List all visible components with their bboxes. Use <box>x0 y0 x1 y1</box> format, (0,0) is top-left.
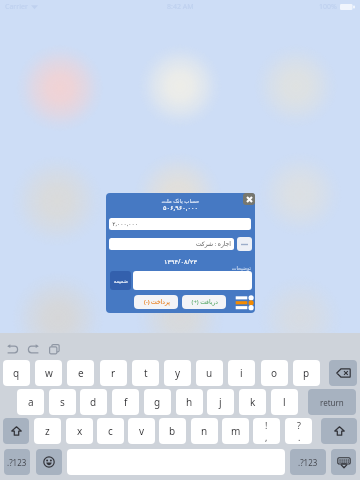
button[interactable]: Close <box>243 193 255 205</box>
staticText: دریافت (+) <box>191 298 218 306</box>
staticText: پرداخت (-) <box>143 298 170 306</box>
staticText: ? <box>297 419 301 431</box>
button[interactable]: n <box>191 418 218 444</box>
button[interactable]: ? <box>285 418 312 444</box>
staticText: , <box>265 431 268 443</box>
staticText: .?123 <box>7 457 27 468</box>
button[interactable]: Account <box>109 238 234 250</box>
button[interactable]: s <box>49 389 76 415</box>
staticText: q <box>13 366 20 380</box>
staticText: v <box>139 424 145 438</box>
button[interactable]: ! <box>253 418 280 444</box>
button[interactable]: Shift <box>3 418 29 444</box>
button[interactable]: o <box>261 360 288 386</box>
staticText: f <box>124 395 128 409</box>
staticText: توضیحات <box>231 265 251 271</box>
staticText: b <box>169 424 176 438</box>
button[interactable]: f <box>112 389 139 415</box>
staticText: r <box>111 366 116 380</box>
button[interactable]: Backspace <box>329 360 357 386</box>
button[interactable]: b <box>159 418 186 444</box>
staticText: 8:42 AM <box>167 2 194 12</box>
staticText: g <box>154 395 161 409</box>
button[interactable]: w <box>35 360 62 386</box>
staticText: o <box>271 366 278 380</box>
staticText: ضمیمه <box>113 278 128 284</box>
staticText: Carrier <box>5 2 28 12</box>
staticText: ! <box>265 419 268 431</box>
staticText: return <box>320 397 344 408</box>
button[interactable]: p <box>293 360 320 386</box>
button[interactable]: Choose account <box>237 237 252 251</box>
staticText: e <box>78 366 84 380</box>
button[interactable]: Redo <box>28 343 39 354</box>
staticText: l <box>283 395 286 409</box>
staticText: i <box>240 366 243 380</box>
staticText: h <box>186 395 193 409</box>
staticText: . <box>298 431 301 443</box>
staticText: w <box>45 366 53 380</box>
staticText: n <box>201 424 208 438</box>
staticText: d <box>90 395 97 409</box>
button[interactable]: t <box>132 360 159 386</box>
staticText: j <box>219 395 222 409</box>
button[interactable]: l <box>271 389 298 415</box>
staticText: x <box>77 424 83 438</box>
button[interactable]: u <box>196 360 223 386</box>
staticText: ۵۰۶,۹۶۰,۰۰۰ <box>106 203 255 212</box>
button[interactable]: Shift <box>321 418 357 444</box>
staticText: اجاره : شرکت <box>195 240 231 248</box>
staticText: p <box>303 366 310 380</box>
staticText: حساب بانک ملت <box>106 197 255 204</box>
staticText: a <box>28 395 34 409</box>
staticText: m <box>231 424 241 438</box>
button[interactable]: k <box>239 389 266 415</box>
button[interactable]: Undo <box>7 343 18 354</box>
button[interactable]: x <box>66 418 93 444</box>
staticText: s <box>60 395 65 409</box>
button[interactable]: Numbers <box>290 449 326 475</box>
button[interactable]: Numbers <box>4 449 30 475</box>
button[interactable]: دریافت (+) <box>182 295 226 309</box>
staticText: k <box>250 395 256 409</box>
button[interactable]: a <box>17 389 44 415</box>
button[interactable]: i <box>228 360 255 386</box>
button[interactable]: q <box>3 360 30 386</box>
button[interactable]: c <box>97 418 124 444</box>
button[interactable]: j <box>207 389 234 415</box>
button[interactable]: e <box>67 360 94 386</box>
button[interactable]: Hide keyboard <box>331 449 356 475</box>
button[interactable]: h <box>176 389 203 415</box>
staticText: z <box>45 424 50 438</box>
button[interactable]: Emoji <box>36 449 62 475</box>
button[interactable]: ضمیمه <box>110 271 131 290</box>
button[interactable]: g <box>144 389 171 415</box>
button[interactable]: پرداخت (-) <box>134 295 178 309</box>
staticText: c <box>108 424 113 438</box>
button[interactable]: m <box>222 418 249 444</box>
staticText: y <box>175 366 181 380</box>
button[interactable]: r <box>100 360 127 386</box>
staticText: ۱۳۹۴/۰۸/۲۳ <box>106 257 255 266</box>
button[interactable]: z <box>34 418 61 444</box>
button[interactable]: Return <box>308 389 356 415</box>
button[interactable]: d <box>80 389 107 415</box>
button[interactable]: v <box>128 418 155 444</box>
button[interactable]: y <box>164 360 191 386</box>
button[interactable]: Amount <box>109 218 251 230</box>
button[interactable]: Options <box>233 294 252 309</box>
staticText: ۲,۰۰۰,۰۰۰ <box>112 220 138 228</box>
staticText: 100% <box>319 2 337 12</box>
staticText: .?123 <box>298 457 318 468</box>
button[interactable]: Description <box>133 271 252 290</box>
staticText: t <box>144 366 148 380</box>
staticText: u <box>206 366 213 380</box>
button[interactable]: Paste <box>49 343 60 354</box>
